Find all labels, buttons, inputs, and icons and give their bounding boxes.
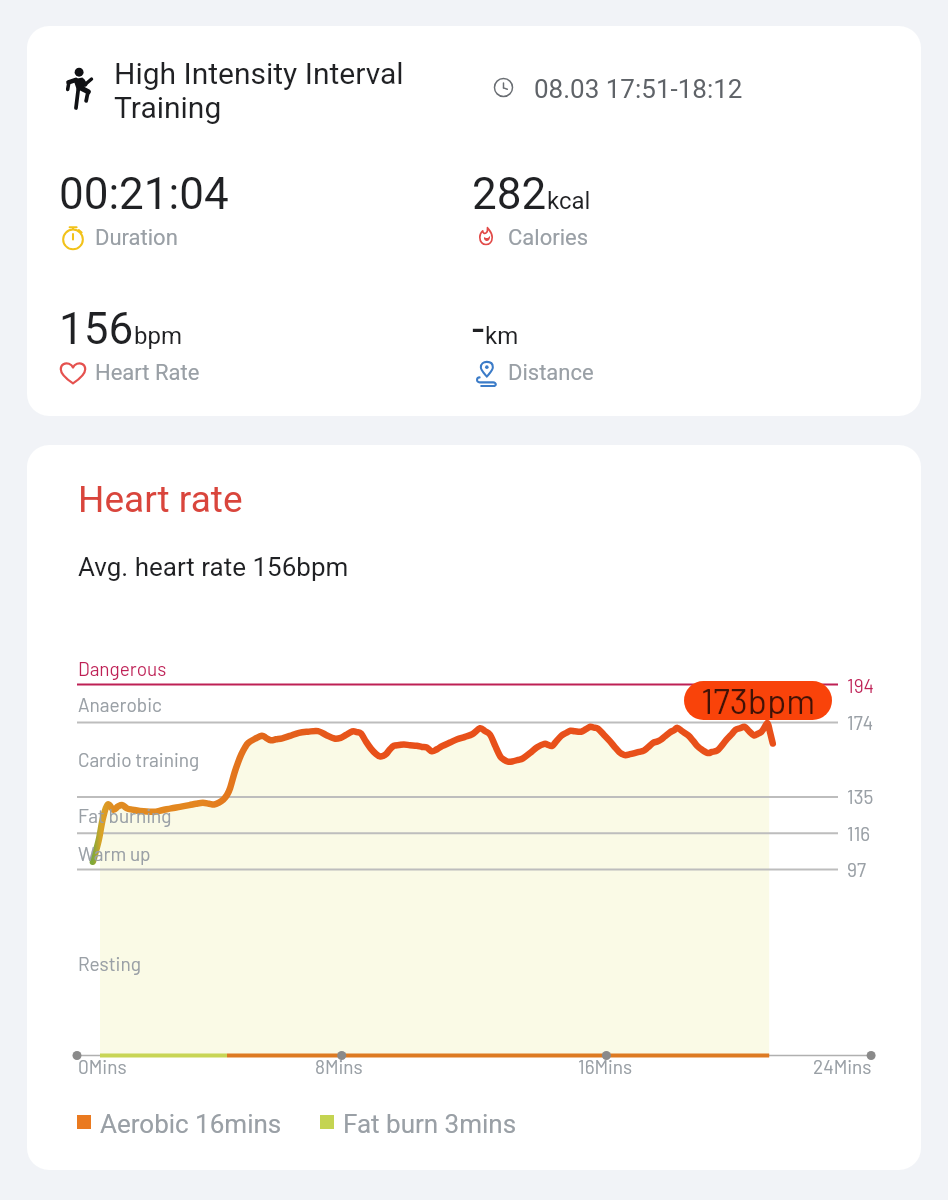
staticText: 173bpm	[701, 681, 816, 718]
staticText: 116	[847, 822, 871, 845]
staticText: Anaerobic	[78, 693, 162, 716]
staticText: Distance	[508, 360, 594, 386]
staticText: Heart rate	[78, 478, 243, 521]
staticText: Duration	[95, 225, 178, 251]
staticText: Dangerous	[78, 657, 167, 680]
staticText: Avg. heart rate 156bpm	[78, 552, 349, 582]
staticText: 0Mins	[78, 1055, 127, 1078]
button[interactable]: High Intensity Interval Training	[27, 26, 921, 416]
staticText: Aerobic 16mins	[100, 1109, 282, 1139]
button[interactable]: 156	[34, 287, 394, 397]
staticText: Cardio training	[78, 748, 200, 771]
staticText: Fat burn 3mins	[343, 1109, 517, 1139]
staticText: km	[485, 322, 519, 350]
staticText: Resting	[78, 952, 141, 975]
staticText: 174	[847, 711, 874, 734]
staticText: 156	[59, 303, 134, 355]
button[interactable]: 282	[447, 152, 807, 262]
staticText: 194	[847, 674, 875, 697]
staticText: kcal	[547, 187, 591, 215]
staticText: -	[472, 303, 485, 355]
staticText: 00:21:04	[59, 168, 229, 220]
button[interactable]: -	[447, 287, 807, 397]
staticText: Heart Rate	[95, 360, 200, 386]
staticText: Fat burning	[78, 804, 172, 827]
staticText: Warm up	[78, 842, 151, 865]
staticText: Calories	[508, 225, 589, 251]
staticText: 135	[847, 785, 874, 808]
staticText: High Intensity Interval Training	[114, 56, 404, 125]
staticText: 08.03 17:51-18:12	[534, 74, 743, 104]
staticText: bpm	[134, 322, 182, 350]
staticText: 8Mins	[315, 1055, 363, 1078]
staticText: 282	[472, 168, 547, 220]
staticText: 97	[847, 858, 866, 881]
staticText: 16Mins	[578, 1055, 633, 1078]
button[interactable]: 00:21:04	[34, 152, 394, 262]
staticText: 24Mins	[813, 1055, 872, 1078]
